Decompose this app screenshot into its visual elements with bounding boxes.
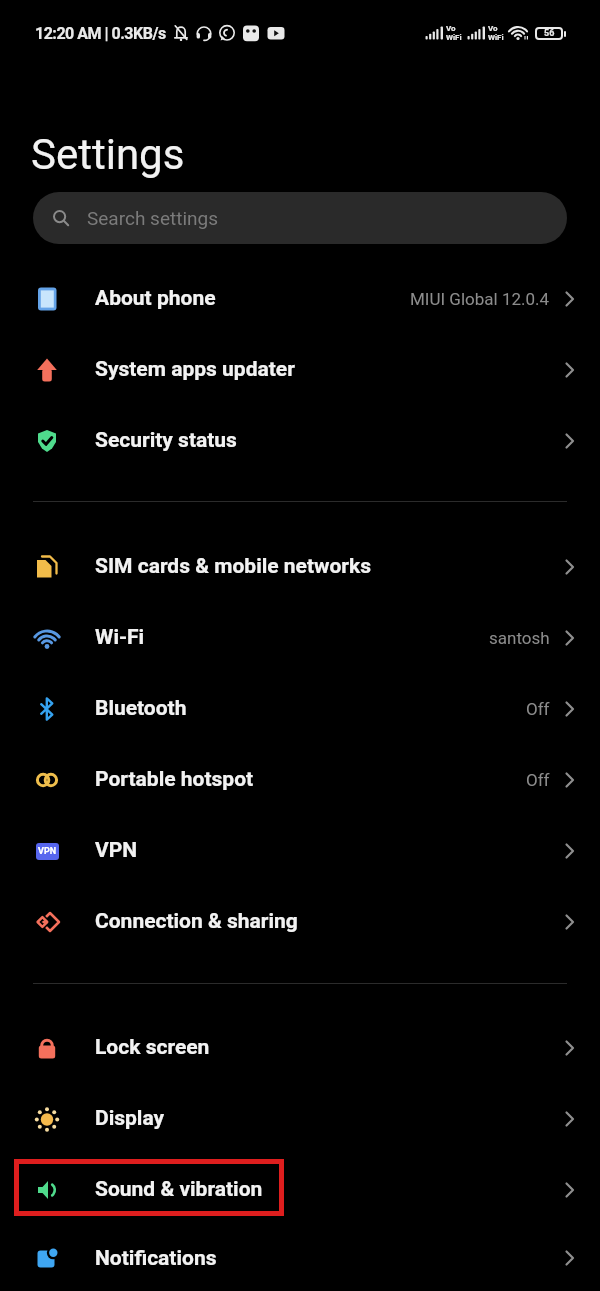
button[interactable]: System apps updater	[0, 334, 600, 405]
staticText: System apps updater	[95, 357, 295, 382]
staticText: Off	[526, 770, 550, 790]
staticText: Lock screen	[95, 1035, 210, 1060]
staticText: Portable hotspot	[95, 767, 254, 792]
button[interactable]: Lock screen	[0, 1012, 600, 1083]
staticText: MIUI Global 12.0.4	[410, 289, 550, 309]
button[interactable]: SIM cards & mobile networks	[0, 531, 600, 602]
staticText: Sound & vibration	[95, 1177, 263, 1202]
button[interactable]: Sound & vibration	[0, 1154, 600, 1225]
staticText: Settings	[31, 130, 185, 179]
staticText: Security status	[95, 428, 237, 453]
staticText: VPN	[95, 838, 138, 863]
staticText: 12:20 AM | 0.3KB/s	[35, 24, 166, 43]
staticText: WiFi	[488, 33, 504, 42]
button[interactable]: Bluetooth	[0, 673, 600, 744]
staticText: 56	[544, 28, 555, 39]
button[interactable]: Portable hotspot	[0, 744, 600, 815]
staticText: santosh	[489, 628, 550, 648]
staticText: Wi-Fi	[95, 625, 145, 650]
staticText: Connection & sharing	[95, 909, 298, 934]
staticText: About phone	[95, 286, 216, 311]
button[interactable]: Search settings	[33, 192, 567, 244]
staticText: VPN	[38, 846, 57, 857]
button[interactable]: Security status	[0, 405, 600, 476]
staticText: Bluetooth	[95, 696, 187, 721]
staticText: Vo	[488, 24, 498, 33]
staticText: Search settings	[87, 207, 218, 229]
staticText: Vo	[446, 24, 456, 33]
button[interactable]: Display	[0, 1083, 600, 1154]
staticText: Off	[526, 699, 550, 719]
button[interactable]: VPN	[0, 815, 600, 886]
button[interactable]: Wi-Fi	[0, 602, 600, 673]
staticText: WiFi	[446, 33, 462, 42]
button[interactable]: Connection & sharing	[0, 886, 600, 957]
staticText: Notifications	[95, 1246, 217, 1271]
button[interactable]: Notifications	[0, 1225, 600, 1291]
staticText: Display	[95, 1106, 165, 1131]
staticText: SIM cards & mobile networks	[95, 554, 372, 579]
button[interactable]: About phone	[0, 263, 600, 334]
